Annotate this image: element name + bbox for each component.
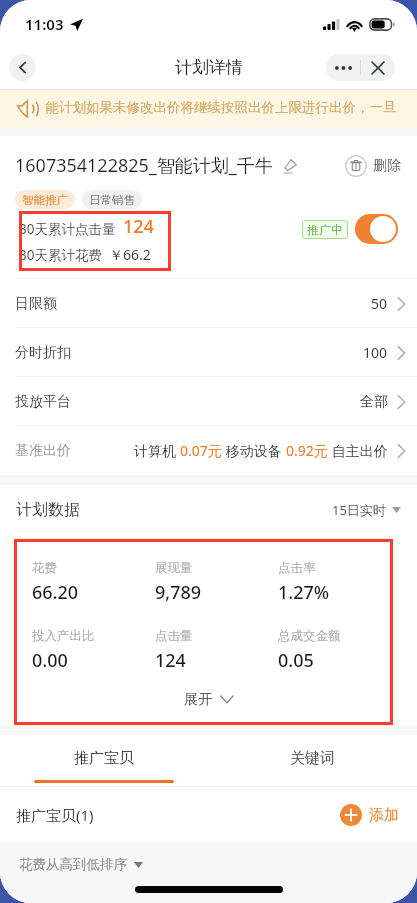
staticText: 投放平台 <box>15 393 71 411</box>
staticText: 推广宝贝 <box>74 749 134 768</box>
staticText: 推广宝贝(1) <box>16 805 94 825</box>
staticText: ￥66.2 <box>109 245 151 264</box>
staticText: 11:03 <box>25 14 64 34</box>
staticText: 0.05 <box>278 648 314 673</box>
staticText: 全部 <box>360 393 388 411</box>
staticText: 点击率 <box>278 560 316 576</box>
staticText: 自主出价 <box>328 441 388 460</box>
staticText: 9,789 <box>155 580 202 605</box>
staticText: 智能计划如果未修改出价将继续按照出价上限进行出价，一旦修改 <box>45 99 404 116</box>
button[interactable]: Toggle promotion <box>355 214 398 244</box>
button[interactable]: 花费从高到低排序 <box>19 856 143 873</box>
button[interactable]: 删除 <box>345 155 401 177</box>
staticText: 1.27% <box>278 580 330 605</box>
staticText: 124 <box>155 648 186 673</box>
button[interactable]: 投放平台 <box>0 377 417 426</box>
button[interactable]: 日限额 <box>0 279 417 328</box>
staticText: 移动设备 <box>222 441 286 460</box>
staticText: 计划详情 <box>175 57 243 78</box>
staticText: 总成交金额 <box>278 628 341 644</box>
button[interactable]: Edit name <box>280 157 298 175</box>
staticText: 花费 <box>32 560 57 576</box>
staticText: 展开 <box>184 690 213 708</box>
staticText: 100 <box>363 343 388 362</box>
button[interactable]: Back <box>9 54 36 81</box>
staticText: 30天累计点击量 <box>19 220 116 238</box>
staticText: 1607354122825_智能计划_千牛 <box>15 153 273 178</box>
staticText: 基准出价 <box>15 442 71 460</box>
staticText: 30天累计花费 <box>19 246 102 264</box>
staticText: 计划数据 <box>16 500 80 520</box>
staticText: 添加 <box>369 806 399 825</box>
staticText: 花费从高到低排序 <box>19 856 127 873</box>
staticText: 展现量 <box>155 560 193 576</box>
button[interactable]: 推广宝贝 <box>0 735 208 787</box>
staticText: 关键词 <box>290 749 335 768</box>
staticText: 124 <box>123 214 154 239</box>
staticText: 0.07元 <box>180 441 222 460</box>
button[interactable]: 关键词 <box>208 735 417 787</box>
button[interactable]: 基准出价 <box>0 426 417 475</box>
button[interactable]: 分时折扣 <box>0 328 417 377</box>
staticText: 删除 <box>373 157 401 175</box>
staticText: 日限额 <box>15 295 57 313</box>
staticText: 66.20 <box>32 580 79 605</box>
staticText: 计算机 <box>134 441 180 460</box>
staticText: 推广中 <box>307 222 343 237</box>
button[interactable]: Close <box>361 54 395 81</box>
button[interactable]: More options <box>326 54 360 81</box>
staticText: 15日实时 <box>332 501 386 519</box>
staticText: 点击量 <box>155 628 193 644</box>
staticText: 日常销售 <box>89 193 135 207</box>
button[interactable]: 展开 <box>0 673 417 725</box>
staticText: 智能推广 <box>22 193 68 207</box>
staticText: 0.00 <box>32 648 68 673</box>
staticText: 投入产出比 <box>32 628 95 644</box>
staticText: 50 <box>371 294 388 313</box>
button[interactable]: 智能计划如果未修改出价将继续按照出价上限进行出价，一旦修改 <box>0 90 417 128</box>
staticText: 分时折扣 <box>15 344 71 362</box>
button[interactable]: 添加 <box>340 804 399 826</box>
button[interactable]: 15日实时 <box>332 501 401 519</box>
staticText: 0.92元 <box>286 441 328 460</box>
